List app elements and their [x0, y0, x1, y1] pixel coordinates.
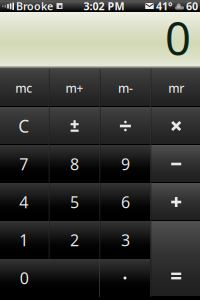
staticText: 6: [121, 191, 130, 213]
button[interactable]: 6: [100, 183, 150, 221]
button[interactable]: 5: [50, 183, 100, 221]
button[interactable]: 8: [50, 145, 100, 183]
staticText: 3:02 PM: [83, 0, 124, 13]
button[interactable]: 0: [0, 259, 99, 297]
staticText: C: [18, 114, 29, 137]
button[interactable]: Divide: [100, 107, 150, 145]
button[interactable]: Minus: [151, 145, 200, 183]
button[interactable]: m-: [100, 69, 150, 107]
button[interactable]: mr: [151, 69, 200, 107]
button[interactable]: m+: [50, 69, 100, 107]
button[interactable]: 2: [50, 221, 100, 259]
button[interactable]: 7: [0, 145, 49, 183]
staticText: 4: [19, 191, 28, 213]
button[interactable]: 1: [0, 221, 49, 259]
staticText: 1: [19, 229, 28, 251]
staticText: 3: [121, 229, 130, 251]
button[interactable]: Decimal point: [100, 259, 150, 297]
staticText: Brooke: [16, 0, 53, 13]
button[interactable]: 3: [100, 221, 150, 259]
button[interactable]: mc: [0, 69, 49, 107]
button[interactable]: Multiply: [151, 107, 200, 145]
button[interactable]: 9: [100, 145, 150, 183]
button[interactable]: 4: [0, 183, 49, 221]
button[interactable]: Equals: [151, 221, 200, 297]
staticText: 7: [19, 153, 28, 175]
staticText: 0: [165, 8, 191, 68]
button[interactable]: Plus minus: [50, 107, 100, 145]
staticText: m-: [118, 80, 133, 96]
staticText: mr: [168, 80, 184, 96]
button[interactable]: Plus: [151, 183, 200, 221]
button[interactable]: C: [0, 107, 49, 145]
staticText: 60: [186, 0, 198, 13]
staticText: m+: [66, 80, 84, 96]
staticText: 0: [20, 267, 29, 289]
staticText: mc: [15, 80, 32, 96]
staticText: 9: [121, 153, 130, 175]
staticText: 8: [70, 153, 79, 175]
staticText: 5: [70, 191, 79, 213]
staticText: 41°: [156, 0, 173, 13]
staticText: 2: [70, 229, 79, 251]
